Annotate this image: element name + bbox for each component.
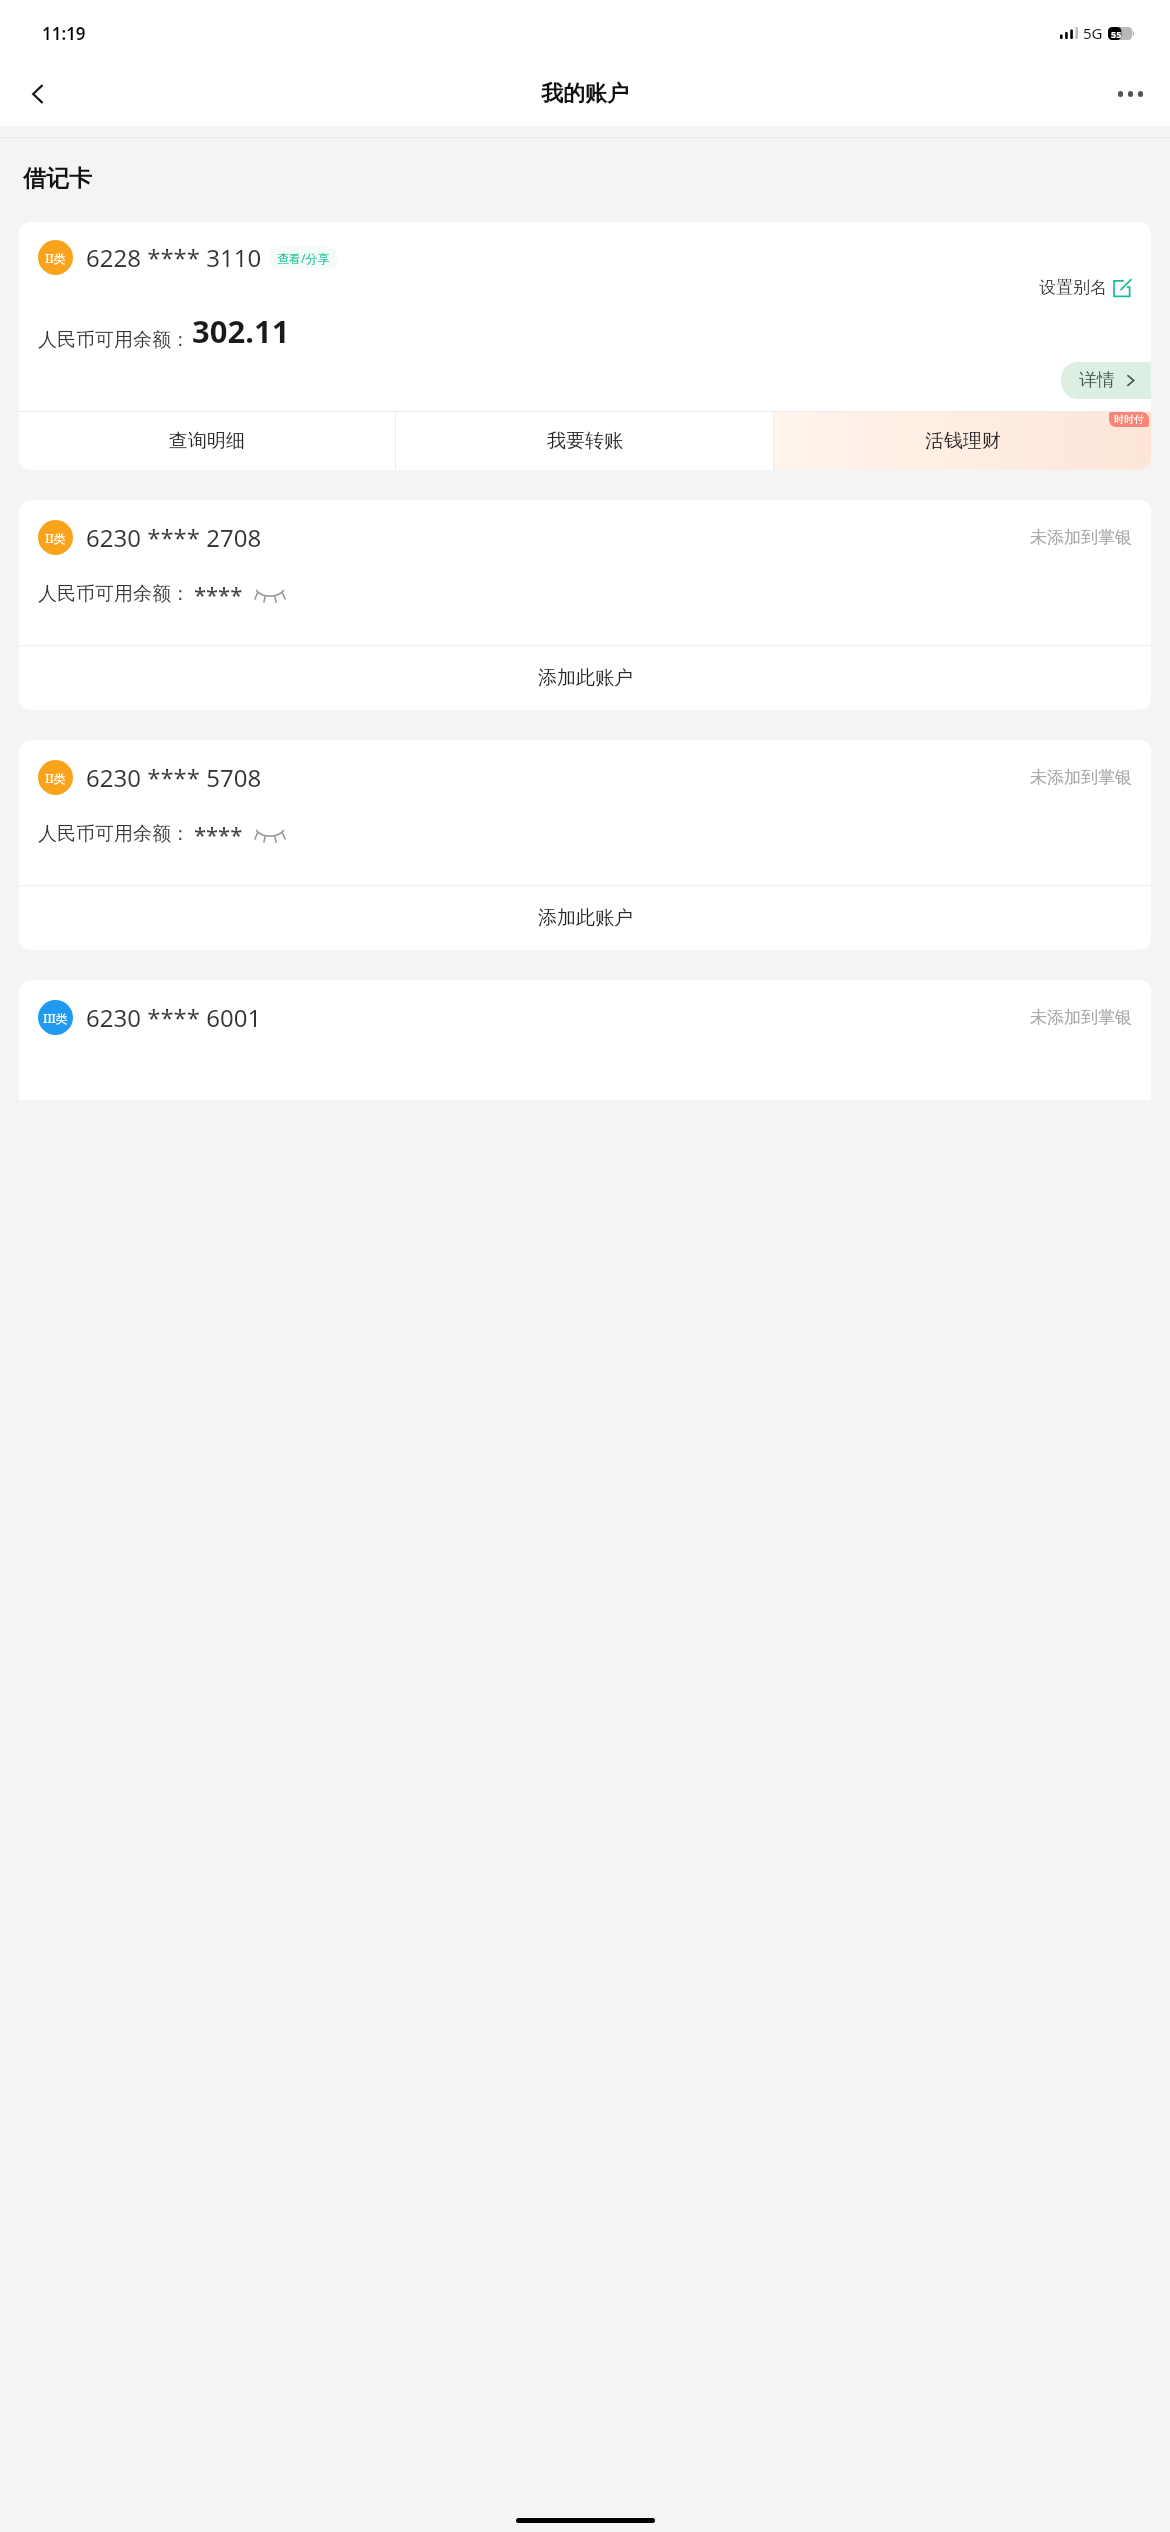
staticText: 6230 **** 2708: [86, 521, 262, 554]
staticText: 55: [1111, 28, 1122, 40]
button[interactable]: 设置别名: [1039, 277, 1132, 298]
button[interactable]: 查询明细: [19, 412, 395, 470]
staticText: 未添加到掌银: [1030, 527, 1132, 548]
button[interactable]: II类: [19, 500, 1151, 710]
staticText: 添加此账户: [538, 666, 633, 690]
staticText: 6228 **** 3110: [86, 241, 262, 274]
staticText: 6230 **** 6001: [86, 1001, 262, 1034]
staticText: 6230 **** 5708: [86, 761, 262, 794]
button[interactable]: II类: [19, 740, 1151, 950]
staticText: 5G: [1083, 23, 1103, 43]
staticText: 详情: [1079, 369, 1115, 392]
button[interactable]: III类: [19, 980, 1151, 1100]
button[interactable]: 详情: [1061, 362, 1151, 399]
staticText: 我要转账: [547, 429, 623, 453]
staticText: ****: [194, 579, 243, 609]
staticText: 时时付: [1114, 413, 1144, 426]
staticText: 11:19: [42, 22, 86, 45]
staticText: II类: [45, 530, 66, 546]
staticText: 查询明细: [169, 429, 245, 453]
staticText: 未添加到掌银: [1030, 767, 1132, 788]
staticText: III类: [43, 1010, 68, 1026]
staticText: 添加此账户: [538, 906, 633, 930]
button[interactable]: 活钱理财: [774, 412, 1151, 470]
button[interactable]: 添加此账户: [19, 646, 1151, 710]
button[interactable]: 我要转账: [396, 412, 773, 470]
button[interactable]: 添加此账户: [19, 886, 1151, 950]
button[interactable]: Back: [14, 70, 62, 118]
staticText: 借记卡: [23, 164, 92, 193]
button[interactable]: More options: [1106, 70, 1154, 118]
staticText: 未添加到掌银: [1030, 1007, 1132, 1028]
staticText: 人民币可用余额：: [38, 582, 190, 606]
staticText: 我的账户: [541, 80, 629, 108]
staticText: 设置别名: [1039, 277, 1107, 298]
staticText: 302.11: [192, 310, 290, 352]
button[interactable]: 查看/分享: [270, 247, 337, 269]
staticText: 人民币可用余额：: [38, 822, 190, 846]
staticText: II类: [45, 770, 66, 786]
staticText: 查看/分享: [277, 250, 330, 266]
staticText: II类: [45, 250, 66, 266]
staticText: ****: [194, 819, 243, 849]
staticText: 活钱理财: [925, 429, 1001, 453]
staticText: 人民币可用余额：: [38, 328, 190, 352]
